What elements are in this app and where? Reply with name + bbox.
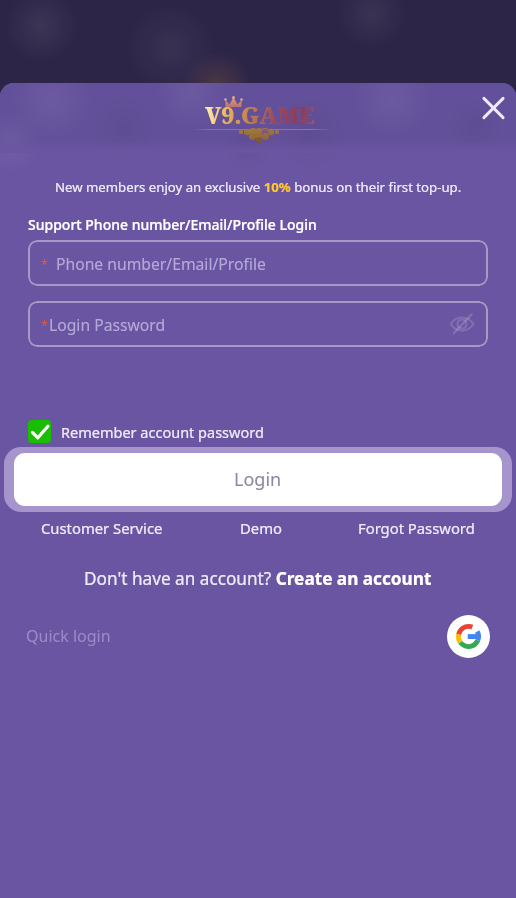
- staticText: Login Password: [49, 314, 166, 335]
- staticText: Login: [234, 467, 282, 492]
- button[interactable]: Show password: [450, 312, 474, 336]
- staticText: Remember account password: [61, 422, 264, 442]
- button[interactable]: Customer Service: [41, 518, 163, 538]
- button[interactable]: Don't have an account? Create an account: [84, 567, 432, 590]
- button[interactable]: *: [28, 301, 488, 347]
- staticText: Phone number/Email/Profile: [56, 253, 266, 274]
- button[interactable]: *: [28, 240, 488, 286]
- staticText: V9.GAME: [205, 99, 315, 130]
- button[interactable]: Remember account password: [28, 420, 264, 443]
- button[interactable]: Forgot Password: [358, 518, 475, 538]
- button[interactable]: Close: [473, 88, 513, 128]
- staticText: *: [41, 316, 49, 334]
- button[interactable]: Quick login: [26, 625, 111, 647]
- staticText: Support Phone number/Email/Profile Login: [28, 215, 317, 234]
- staticText: New members enjoy an exclusive 10% bonus…: [55, 178, 462, 196]
- staticText: *: [41, 255, 49, 273]
- button[interactable]: Login: [14, 453, 502, 506]
- button[interactable]: Sign in with Google: [447, 615, 490, 658]
- button[interactable]: Demo: [240, 518, 282, 538]
